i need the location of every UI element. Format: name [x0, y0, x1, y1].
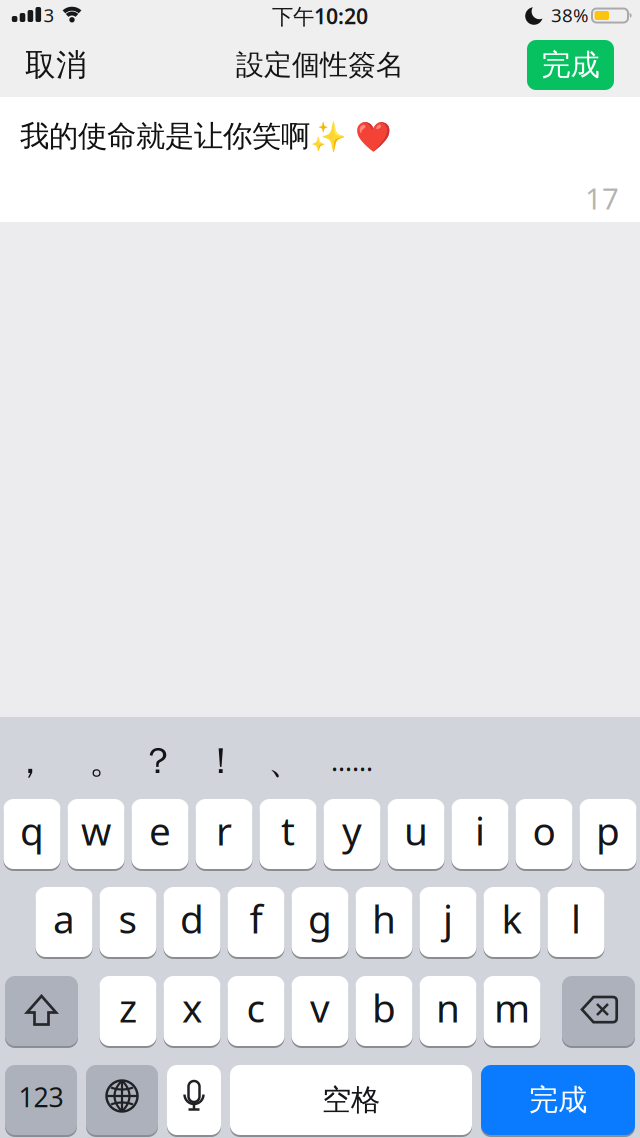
button[interactable]: 完成	[527, 40, 614, 90]
staticText: x	[182, 982, 202, 1033]
staticText: j	[443, 893, 453, 944]
staticText: e	[149, 805, 171, 856]
staticText: 17	[585, 178, 619, 217]
staticText: 123	[18, 1079, 63, 1115]
button[interactable]: 123	[5, 1065, 77, 1135]
staticText: ，	[12, 739, 48, 783]
button[interactable]: e	[131, 799, 188, 869]
staticText: 38%	[551, 3, 589, 27]
button[interactable]: Next keyboard	[86, 1065, 158, 1135]
staticText: z	[119, 982, 137, 1033]
staticText: q	[20, 805, 44, 856]
staticText: b	[372, 982, 396, 1033]
button[interactable]: Dictation	[167, 1065, 221, 1135]
button[interactable]: u	[387, 799, 444, 869]
staticText: h	[372, 893, 396, 944]
staticText: t	[281, 805, 295, 856]
staticText: g	[308, 893, 332, 944]
staticText: ？	[140, 739, 176, 783]
staticText: 空格	[322, 1082, 380, 1118]
staticText: 設定個性簽名	[236, 48, 404, 82]
staticText: 、	[268, 739, 304, 783]
button[interactable]: l	[547, 887, 604, 957]
button[interactable]: 、	[268, 729, 304, 793]
button[interactable]: ，	[12, 729, 48, 793]
staticText: 3	[43, 3, 54, 27]
button[interactable]: ！	[203, 729, 239, 793]
button[interactable]: 完成	[481, 1065, 635, 1135]
button[interactable]: Delete	[562, 976, 635, 1046]
button[interactable]: c	[227, 976, 284, 1046]
staticText: i	[475, 805, 485, 856]
button[interactable]: 取消	[6, 36, 106, 94]
button[interactable]: k	[483, 887, 540, 957]
staticText: l	[571, 893, 581, 944]
staticText: k	[501, 893, 522, 944]
staticText: 下午10:20	[272, 2, 368, 30]
staticText: 完成	[529, 1082, 587, 1118]
button[interactable]: Shift	[5, 976, 78, 1046]
button[interactable]: n	[419, 976, 476, 1046]
button[interactable]: z	[99, 976, 156, 1046]
button[interactable]: b	[355, 976, 412, 1046]
staticText: p	[596, 805, 620, 856]
button[interactable]: h	[355, 887, 412, 957]
staticText: n	[436, 982, 460, 1033]
button[interactable]: m	[483, 976, 540, 1046]
staticText: 我的使命就是让你笑啊✨ ❤️	[20, 115, 392, 154]
button[interactable]: a	[35, 887, 92, 957]
staticText: c	[246, 982, 265, 1033]
button[interactable]: 。	[89, 729, 125, 793]
staticText: y	[342, 805, 362, 856]
staticText: d	[180, 893, 204, 944]
button[interactable]: v	[291, 976, 348, 1046]
staticText: ……	[331, 743, 373, 779]
staticText: 完成	[541, 47, 599, 83]
button[interactable]: t	[259, 799, 316, 869]
staticText: m	[494, 982, 530, 1033]
staticText: ！	[203, 739, 239, 783]
button[interactable]: i	[451, 799, 508, 869]
staticText: u	[404, 805, 428, 856]
button[interactable]: ？	[140, 729, 176, 793]
staticText: f	[249, 893, 262, 944]
staticText: 取消	[25, 46, 87, 84]
button[interactable]: g	[291, 887, 348, 957]
button[interactable]: s	[99, 887, 156, 957]
button[interactable]: 空格	[230, 1065, 472, 1135]
button[interactable]: x	[163, 976, 220, 1046]
button[interactable]: ……	[331, 729, 373, 793]
staticText: w	[81, 805, 111, 856]
button[interactable]: p	[579, 799, 636, 869]
staticText: 。	[89, 739, 125, 783]
button[interactable]: f	[227, 887, 284, 957]
staticText: v	[310, 982, 330, 1033]
button[interactable]: d	[163, 887, 220, 957]
button[interactable]: j	[419, 887, 476, 957]
staticText: a	[53, 893, 75, 944]
button[interactable]: y	[323, 799, 380, 869]
button[interactable]: w	[67, 799, 124, 869]
button[interactable]: o	[515, 799, 572, 869]
staticText: s	[118, 893, 137, 944]
button[interactable]: q	[3, 799, 60, 869]
staticText: o	[532, 805, 555, 856]
staticText: r	[216, 805, 232, 856]
button[interactable]: r	[195, 799, 252, 869]
